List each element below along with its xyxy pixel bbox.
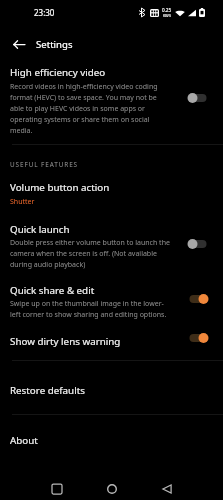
staticText: Quick launch: [10, 223, 70, 236]
button[interactable]: High efficiency video: [0, 66, 223, 136]
button[interactable]: About: [0, 434, 223, 447]
button[interactable]: Volume button action: [0, 181, 223, 207]
staticText: Show dirty lens warning: [10, 335, 121, 348]
button[interactable]: Recent apps: [0, 478, 75, 500]
button[interactable]: Switch off: [185, 234, 211, 254]
button[interactable]: Back: [149, 478, 223, 500]
staticText: 23:30: [34, 7, 55, 18]
staticText: High efficiency video: [10, 66, 106, 79]
staticText: Double press either volume button to lau…: [10, 238, 170, 270]
staticText: Settings: [36, 38, 73, 51]
button[interactable]: Restore defaults: [0, 384, 223, 397]
button[interactable]: Switch on: [185, 328, 211, 348]
staticText: Record videos in high-efficiency video c…: [10, 82, 170, 136]
staticText: Restore defaults: [10, 384, 85, 397]
button[interactable]: Home: [75, 478, 149, 500]
button[interactable]: Quick launch: [0, 223, 223, 270]
staticText: Quick share & edit: [10, 284, 95, 297]
staticText: Swipe up on the thumbnail image in the l…: [10, 299, 170, 320]
button[interactable]: Switch off: [185, 88, 211, 108]
button[interactable]: Switch on: [185, 289, 211, 309]
button[interactable]: Back: [7, 33, 30, 56]
button[interactable]: Show dirty lens warning: [0, 331, 223, 351]
staticText: Volume button action: [10, 181, 110, 194]
button[interactable]: Quick share & edit: [0, 284, 223, 320]
staticText: USEFUL FEATURES: [10, 160, 78, 169]
staticText: Shutter: [10, 197, 35, 207]
staticText: About: [10, 434, 38, 447]
staticText: KB/S: [163, 13, 171, 18]
staticText: 0.25: [162, 7, 172, 13]
